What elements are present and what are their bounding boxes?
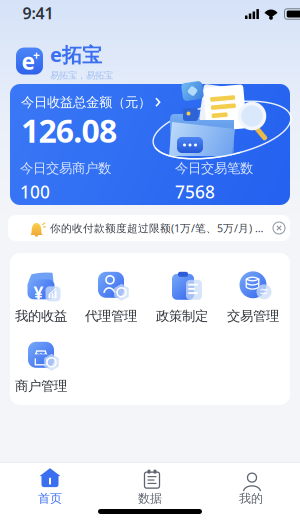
button[interactable]: 交易管理: [218, 266, 288, 326]
staticText: 今日收益总金额（元）: [21, 94, 151, 110]
staticText: 交易管理: [227, 308, 279, 324]
staticText: 126.08: [21, 109, 117, 151]
staticText: 商户管理: [15, 378, 67, 394]
button[interactable]: 我的: [211, 465, 291, 509]
staticText: 政策制定: [156, 308, 208, 324]
staticText: +: [33, 47, 40, 63]
staticText: 代理管理: [85, 308, 137, 324]
button[interactable]: 商户管理: [6, 336, 76, 396]
staticText: e拓宝: [50, 41, 102, 68]
staticText: 我的: [239, 491, 263, 506]
staticText: 今日交易笔数: [175, 160, 253, 176]
staticText: 易拓宝，易拓宝: [50, 70, 113, 81]
staticText: 我的收益: [15, 308, 67, 324]
staticText: e: [21, 46, 35, 76]
staticText: 100: [20, 180, 50, 203]
staticText: 首页: [38, 491, 62, 506]
staticText: 7568: [175, 180, 215, 203]
button[interactable]: 首页: [10, 465, 90, 509]
staticText: 9:41: [22, 2, 53, 24]
button[interactable]: ¥: [6, 266, 76, 326]
button[interactable]: 数据: [110, 465, 190, 509]
staticText: 数据: [138, 491, 162, 506]
button[interactable]: 今日收益总金额（元）: [21, 94, 161, 110]
button[interactable]: 政策制定: [147, 266, 217, 326]
button[interactable]: 关闭: [270, 215, 288, 241]
staticText: ¥: [33, 281, 43, 304]
button[interactable]: 代理管理: [76, 266, 146, 326]
button[interactable]: 你的收付款额度超过限额(1万/笔、5万/月) …: [29, 215, 263, 241]
staticText: 你的收付款额度超过限额(1万/笔、5万/月) …: [50, 221, 263, 235]
staticText: 今日交易商户数: [20, 160, 111, 176]
